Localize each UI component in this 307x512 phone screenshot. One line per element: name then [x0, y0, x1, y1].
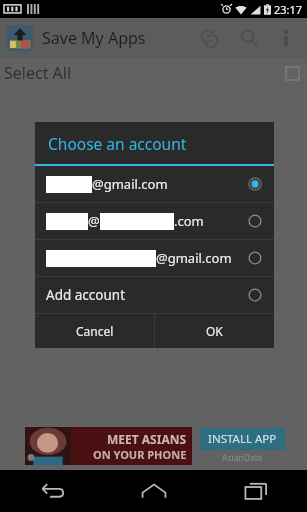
staticText: INSTALL APP [208, 431, 277, 447]
staticText: MEET ASIANS [107, 431, 187, 447]
button[interactable]: MEET ASIANS [25, 427, 285, 465]
button[interactable]: Back [0, 470, 103, 512]
button[interactable]: More options [269, 21, 303, 55]
staticText: @ [88, 212, 100, 230]
staticText: AsianDate [222, 452, 263, 464]
button[interactable]: OK [155, 314, 274, 348]
staticText: 23:17 [274, 2, 303, 17]
staticText: Add account [46, 286, 126, 304]
button[interactable]: @gmail.com [35, 240, 274, 276]
staticText: ON YOUR PHONE [93, 447, 187, 462]
button[interactable]: Cancel [35, 314, 154, 348]
button[interactable]: @ [35, 203, 274, 239]
button[interactable]: Home [103, 470, 205, 512]
button[interactable]: Refresh [189, 18, 229, 58]
staticText: @gmail.com [156, 249, 232, 267]
staticText: OK [206, 323, 223, 339]
button[interactable]: Select All [0, 58, 307, 88]
button[interactable]: Recent apps [205, 470, 307, 512]
staticText: .com [174, 212, 204, 230]
staticText: Cancel [76, 323, 114, 339]
staticText: Select All [4, 62, 72, 84]
staticText: Save My Apps [42, 27, 146, 49]
button[interactable]: Add account [35, 277, 274, 313]
button[interactable]: @gmail.com [35, 166, 274, 202]
staticText: Choose an account [48, 133, 187, 154]
staticText: @gmail.com [92, 175, 168, 193]
